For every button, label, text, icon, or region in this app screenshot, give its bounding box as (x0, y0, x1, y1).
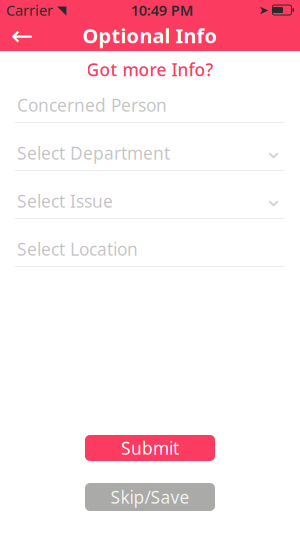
staticText: ← (11, 20, 33, 51)
staticText: Carrier (6, 0, 53, 20)
button[interactable]: Select Department (0, 136, 300, 184)
staticText: Skip/Save (110, 485, 189, 508)
staticText: Select Issue (17, 189, 113, 212)
staticText: Select Department (17, 141, 170, 164)
staticText: Got more Info? (86, 58, 213, 81)
staticText: ➤ (258, 3, 268, 17)
staticText: Optional Info (82, 22, 217, 49)
button[interactable]: Back (0, 20, 44, 51)
staticText: ⌄ (264, 138, 283, 163)
staticText: ⌄ (264, 186, 283, 211)
staticText: 10:49 PM (131, 0, 194, 20)
staticText: Submit (121, 436, 179, 459)
button[interactable]: Skip/Save (85, 483, 215, 511)
staticText: Concerned Person (17, 93, 167, 116)
button[interactable]: Select Location (0, 232, 300, 280)
button[interactable]: Concerned Person (0, 88, 300, 136)
staticText: ◥ (57, 3, 66, 17)
button[interactable]: Submit (85, 435, 215, 461)
staticText: Select Location (17, 237, 138, 260)
button[interactable]: Select Issue (0, 184, 300, 232)
